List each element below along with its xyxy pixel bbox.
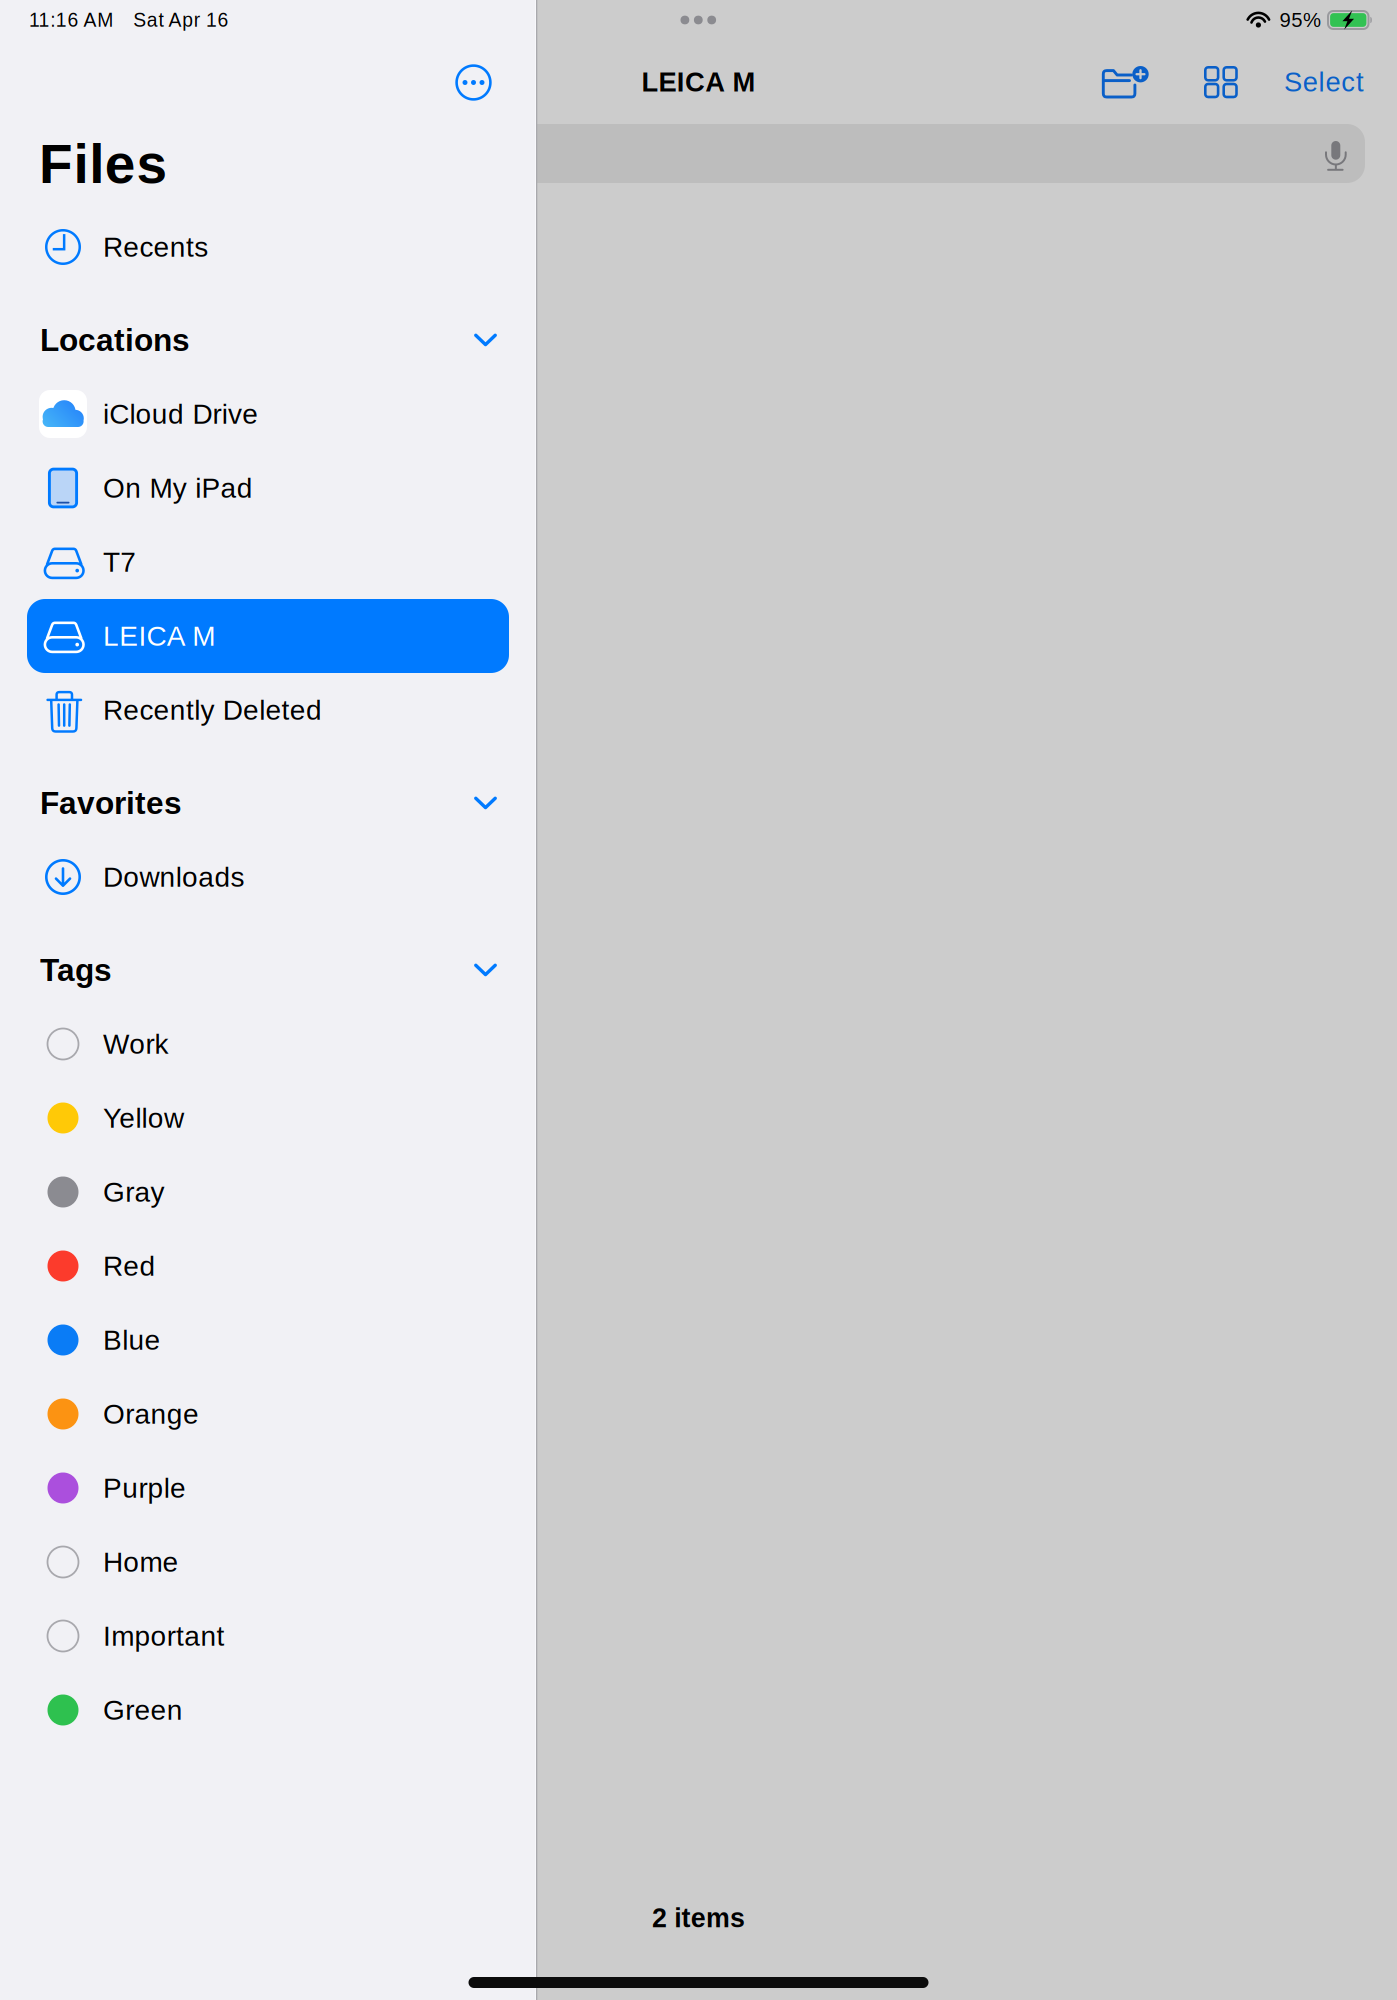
button[interactable]: Yellow bbox=[0, 1081, 537, 1155]
button[interactable]: Home bbox=[0, 1525, 537, 1599]
button[interactable]: Tags bbox=[0, 933, 537, 1007]
staticText: 2 items bbox=[652, 1903, 745, 1933]
button[interactable]: LEICA M bbox=[0, 599, 537, 673]
staticText: 95% bbox=[1279, 9, 1321, 31]
staticText: Tags bbox=[40, 952, 112, 988]
button[interactable]: Select bbox=[1284, 67, 1364, 97]
button[interactable]: Favorites bbox=[0, 766, 537, 840]
button[interactable]: Recents bbox=[0, 210, 537, 284]
staticText: Orange bbox=[103, 1398, 199, 1430]
button[interactable]: T7 bbox=[0, 525, 537, 599]
button[interactable]: Work bbox=[0, 1007, 537, 1081]
button[interactable]: Search bbox=[32, 124, 1365, 183]
button[interactable]: Downloads bbox=[0, 840, 537, 914]
staticText: Work bbox=[103, 1028, 169, 1060]
staticText: Home bbox=[103, 1546, 179, 1578]
staticText: Blue bbox=[103, 1324, 161, 1356]
staticText: Downloads bbox=[103, 861, 245, 893]
staticText: T7 bbox=[103, 546, 136, 578]
staticText: Important bbox=[103, 1620, 225, 1652]
button[interactable]: Purple bbox=[0, 1451, 537, 1525]
staticText: 11:16 AM bbox=[29, 9, 113, 31]
staticText: LEICA M bbox=[103, 620, 215, 652]
button[interactable]: Recently Deleted bbox=[0, 673, 537, 747]
button[interactable]: Orange bbox=[0, 1377, 537, 1451]
button[interactable]: Locations bbox=[0, 303, 537, 377]
button[interactable]: On My iPad bbox=[0, 451, 537, 525]
staticText: LEICA M bbox=[641, 67, 756, 97]
staticText: Locations bbox=[40, 322, 190, 358]
button[interactable]: Red bbox=[0, 1229, 537, 1303]
button[interactable]: Green bbox=[0, 1673, 537, 1747]
staticText: Recents bbox=[103, 231, 208, 263]
button[interactable]: More options bbox=[454, 63, 492, 101]
button[interactable]: Important bbox=[0, 1599, 537, 1673]
button[interactable]: Blue bbox=[0, 1303, 537, 1377]
staticText: Red bbox=[103, 1250, 155, 1282]
staticText: Recently Deleted bbox=[103, 694, 322, 726]
staticText: On My iPad bbox=[103, 472, 253, 504]
staticText: Select bbox=[1284, 67, 1364, 97]
staticText: Green bbox=[103, 1694, 183, 1726]
staticText: Files bbox=[39, 133, 167, 195]
button[interactable]: New Folder bbox=[1101, 64, 1149, 100]
button[interactable]: Gray bbox=[0, 1155, 537, 1229]
staticText: Gray bbox=[103, 1176, 165, 1208]
staticText: Sat Apr 16 bbox=[133, 9, 229, 31]
staticText: Favorites bbox=[40, 785, 182, 821]
staticText: Yellow bbox=[103, 1102, 184, 1134]
staticText: Purple bbox=[103, 1472, 186, 1504]
button[interactable]: View Options bbox=[1204, 65, 1238, 99]
button[interactable]: iCloud Drive bbox=[0, 377, 537, 451]
staticText: iCloud Drive bbox=[103, 398, 258, 430]
